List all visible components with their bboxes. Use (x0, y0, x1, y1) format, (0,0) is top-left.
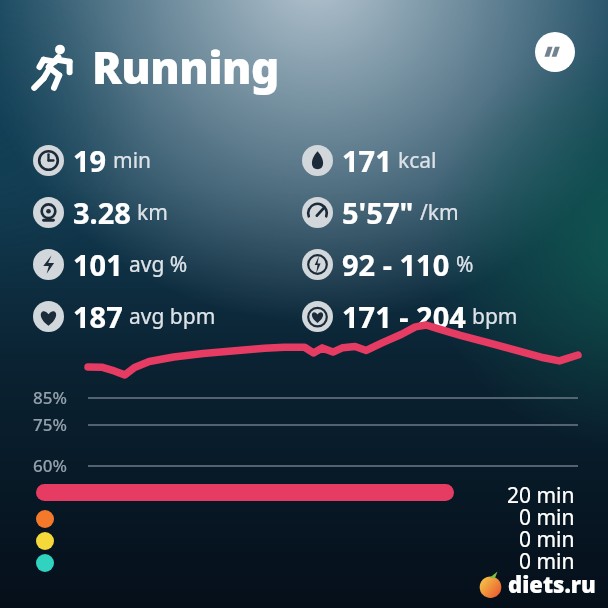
staticText: kcal (398, 146, 437, 175)
staticText: 0 min (519, 547, 575, 569)
staticText: min (113, 146, 152, 175)
button[interactable]: 101 (33, 243, 188, 285)
staticText: avg bpm (129, 302, 216, 331)
button[interactable]: App badge (535, 32, 575, 72)
button[interactable]: 171 (302, 139, 437, 181)
staticText: diets.ru (508, 569, 596, 599)
staticText: avg % (129, 250, 188, 279)
staticText: 20 min (507, 481, 575, 503)
staticText: bpm (472, 302, 518, 331)
button[interactable]: 171 - 204 (302, 295, 518, 337)
button[interactable]: 5'57" (302, 191, 459, 233)
staticText: 171 - 204 (342, 297, 466, 336)
staticText: 60% (33, 454, 67, 477)
staticText: Running (92, 37, 279, 97)
staticText: 92 - 110 (342, 245, 450, 284)
staticText: 187 (73, 297, 123, 336)
staticText: 19 (73, 141, 107, 180)
staticText: % (456, 250, 474, 279)
button[interactable]: 92 - 110 (302, 243, 474, 285)
staticText: 0 min (519, 525, 575, 547)
staticText: /km (420, 198, 459, 227)
staticText: 5'57" (342, 193, 414, 232)
button[interactable]: diets.ru (477, 569, 596, 599)
staticText: 3.28 (73, 193, 131, 232)
button[interactable]: 3.28 (33, 191, 168, 233)
button[interactable]: 187 (33, 295, 216, 337)
button[interactable]: Running (28, 36, 279, 98)
staticText: 101 (73, 245, 123, 284)
staticText: 75% (33, 413, 67, 436)
staticText: km (137, 198, 168, 227)
button[interactable]: 19 (33, 139, 152, 181)
staticText: 171 (342, 141, 392, 180)
staticText: 0 min (519, 503, 575, 525)
staticText: 85% (33, 386, 67, 409)
